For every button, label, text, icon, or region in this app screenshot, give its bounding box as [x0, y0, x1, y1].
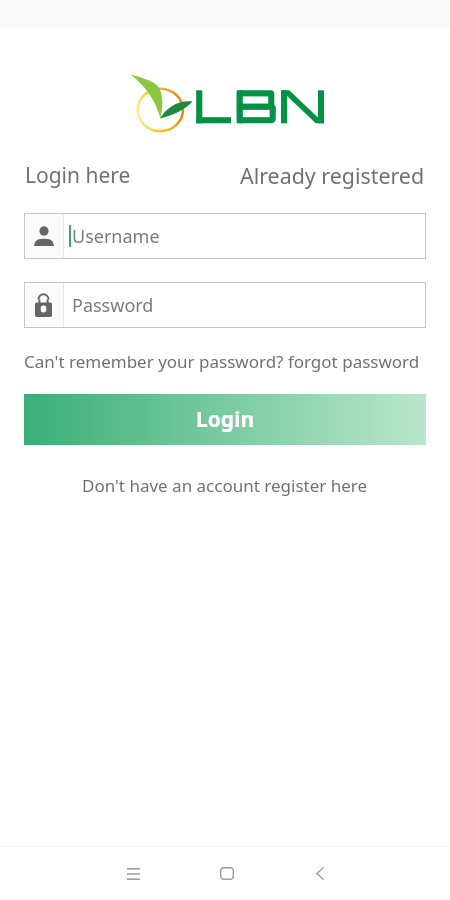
button[interactable]: Home [179, 847, 274, 900]
button[interactable]: Can't remember your password? forgot pas… [24, 350, 420, 373]
button[interactable]: Login here [25, 161, 131, 190]
button[interactable]: Already registered [240, 161, 425, 190]
staticText: Password [72, 293, 154, 318]
button[interactable]: Recent apps [87, 847, 179, 900]
button[interactable]: Don't have an account register here [82, 474, 368, 497]
staticText: Username [72, 224, 160, 249]
staticText: Login [196, 405, 255, 434]
button[interactable]: Password [24, 282, 426, 328]
button[interactable]: Back [274, 847, 366, 900]
button[interactable]: Login [24, 394, 426, 445]
button[interactable]: Username [24, 213, 426, 259]
